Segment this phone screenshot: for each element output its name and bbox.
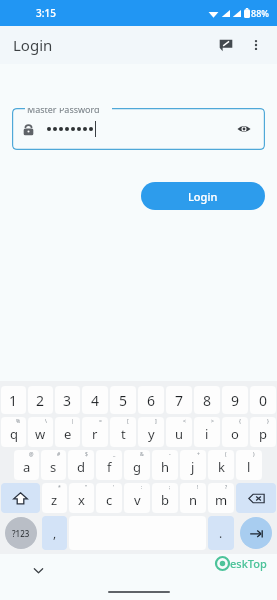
- button[interactable]: <: [166, 417, 192, 447]
- staticText: 3: [63, 391, 72, 410]
- staticText: \: [45, 418, 47, 425]
- staticText: ?: [225, 484, 228, 491]
- button[interactable]: ?123: [5, 517, 37, 549]
- button[interactable]: %: [1, 417, 26, 447]
- button[interactable]: !: [180, 483, 206, 513]
- staticText: i: [205, 425, 209, 443]
- staticText: e: [64, 425, 72, 443]
- staticText: =: [99, 418, 102, 425]
- button[interactable]: *: [42, 483, 67, 513]
- button[interactable]: ]: [138, 417, 164, 447]
- staticText: z: [51, 491, 58, 509]
- staticText: ): [253, 451, 255, 458]
- staticText: v: [134, 491, 141, 509]
- staticText: Login: [188, 189, 218, 204]
- staticText: (: [225, 451, 227, 458]
- staticText: .: [219, 525, 223, 541]
- button[interactable]: ": [69, 483, 94, 513]
- staticText: 1: [9, 391, 18, 410]
- staticText: ?123: [12, 528, 30, 539]
- staticText: #: [57, 451, 61, 458]
- button[interactable]: ': [96, 483, 122, 513]
- staticText: [: [127, 418, 129, 425]
- staticText: {: [239, 418, 241, 425]
- button[interactable]: 1: [1, 386, 26, 414]
- staticText: <: [183, 418, 186, 425]
- button[interactable]: Backspace: [236, 483, 276, 513]
- staticText: t: [121, 425, 126, 443]
- staticText: ,: [53, 525, 57, 541]
- button[interactable]: :: [124, 483, 150, 513]
- button[interactable]: 3: [55, 386, 80, 414]
- button[interactable]: @: [14, 450, 39, 480]
- staticText: $: [85, 451, 88, 458]
- staticText: n: [189, 491, 198, 509]
- staticText: o: [231, 425, 239, 443]
- staticText: Master Password: [27, 108, 100, 115]
- button[interactable]: Show password: [233, 118, 255, 140]
- button[interactable]: |: [55, 417, 80, 447]
- staticText: >: [211, 418, 214, 425]
- button[interactable]: _: [96, 450, 122, 480]
- button[interactable]: Show password: [12, 108, 265, 150]
- staticText: s: [50, 458, 57, 476]
- button[interactable]: }: [250, 417, 276, 447]
- staticText: k: [218, 458, 225, 476]
- staticText: |: [71, 418, 74, 425]
- staticText: y: [148, 425, 155, 443]
- staticText: +: [197, 451, 200, 458]
- staticText: j: [191, 458, 195, 476]
- staticText: c: [106, 491, 113, 509]
- button[interactable]: ?: [208, 483, 234, 513]
- staticText: @: [29, 451, 34, 458]
- button[interactable]: 4: [82, 386, 108, 414]
- staticText: a: [23, 458, 31, 476]
- button[interactable]: 8: [194, 386, 220, 414]
- staticText: 3:15: [36, 6, 56, 20]
- button[interactable]: 2: [28, 386, 53, 414]
- button[interactable]: Feedback: [211, 30, 241, 60]
- button[interactable]: .: [208, 516, 234, 550]
- button[interactable]: >: [194, 417, 220, 447]
- button[interactable]: (: [208, 450, 234, 480]
- staticText: :: [141, 484, 143, 491]
- button[interactable]: #: [41, 450, 66, 480]
- button[interactable]: =: [82, 417, 108, 447]
- staticText: 4: [91, 391, 100, 410]
- staticText: q: [10, 425, 18, 443]
- staticText: f: [107, 458, 112, 476]
- staticText: u: [175, 425, 184, 443]
- button[interactable]: More options: [241, 30, 271, 60]
- staticText: %: [16, 418, 21, 425]
- staticText: ': [113, 484, 115, 491]
- button[interactable]: [: [110, 417, 136, 447]
- button[interactable]: 7: [166, 386, 192, 414]
- staticText: g: [133, 458, 141, 476]
- staticText: }: [267, 418, 269, 425]
- staticText: _: [113, 451, 116, 458]
- button[interactable]: 0: [250, 386, 276, 414]
- staticText: 0: [259, 391, 268, 410]
- button[interactable]: Enter: [240, 517, 272, 549]
- staticText: !: [197, 484, 199, 491]
- staticText: h: [161, 458, 170, 476]
- button[interactable]: &: [124, 450, 150, 480]
- button[interactable]: 5: [110, 386, 136, 414]
- button[interactable]: Shift: [1, 483, 40, 513]
- button[interactable]: 6: [138, 386, 164, 414]
- staticText: p: [259, 425, 267, 443]
- button[interactable]: {: [222, 417, 248, 447]
- button[interactable]: -: [152, 450, 178, 480]
- button[interactable]: +: [180, 450, 206, 480]
- button[interactable]: Login: [141, 182, 265, 210]
- button[interactable]: 9: [222, 386, 248, 414]
- button[interactable]: ;: [152, 483, 178, 513]
- button[interactable]: \: [28, 417, 53, 447]
- button[interactable]: ): [236, 450, 262, 480]
- button[interactable]: Hide keyboard: [28, 560, 48, 580]
- button[interactable]: ,: [42, 516, 67, 550]
- staticText: &: [140, 451, 144, 458]
- button[interactable]: $: [68, 450, 94, 480]
- staticText: 7: [175, 391, 184, 410]
